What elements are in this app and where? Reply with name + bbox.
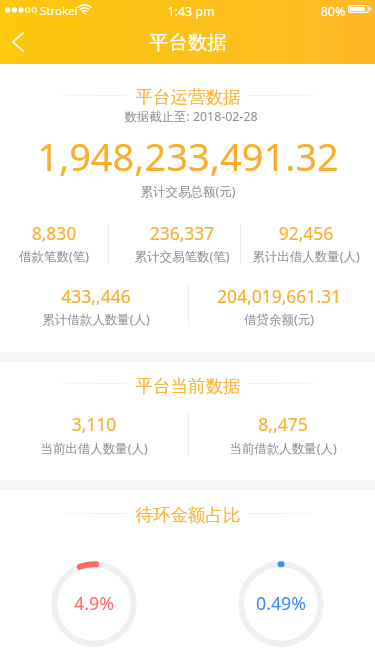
button[interactable]: Back [0, 20, 42, 64]
staticText: 当前借款人数量(人) [183, 440, 375, 457]
staticText: 数据截止至: 2018-02-28 [41, 108, 341, 125]
staticText: 80% [303, 3, 363, 20]
staticText: 平台当前数据 [58, 375, 318, 397]
staticText: 0.49% [221, 591, 341, 615]
staticText: 待环金额占比 [58, 504, 318, 526]
staticText: 1,948,233,491.32 [3, 130, 373, 182]
staticText: 当前出借人数量(人) [0, 440, 194, 457]
staticText: 累计借款人数量(人) [0, 311, 196, 328]
staticText: 8,,475 [183, 412, 375, 436]
staticText: 平台数据 [88, 30, 288, 55]
staticText: Strokei [40, 3, 78, 19]
staticText: 433,,446 [0, 284, 196, 308]
staticText: 4.9% [34, 591, 154, 615]
staticText: 1:43 pm [131, 3, 251, 20]
staticText: 8,830 [0, 221, 154, 245]
staticText: 借贷余额(元) [179, 311, 375, 328]
staticText: 236,337 [82, 221, 282, 245]
staticText: 3,110 [0, 412, 194, 436]
staticText: 借款笔数(笔) [0, 248, 154, 265]
staticText: 累计交易总额(元) [68, 183, 308, 200]
staticText: 累计出借人数量(人) [206, 248, 375, 265]
staticText: 204,019,661.31 [179, 284, 375, 308]
staticText: 平台运营数据 [58, 86, 318, 108]
staticText: 累计交易笔数(笔) [82, 248, 282, 265]
staticText: 92,456 [206, 221, 375, 245]
